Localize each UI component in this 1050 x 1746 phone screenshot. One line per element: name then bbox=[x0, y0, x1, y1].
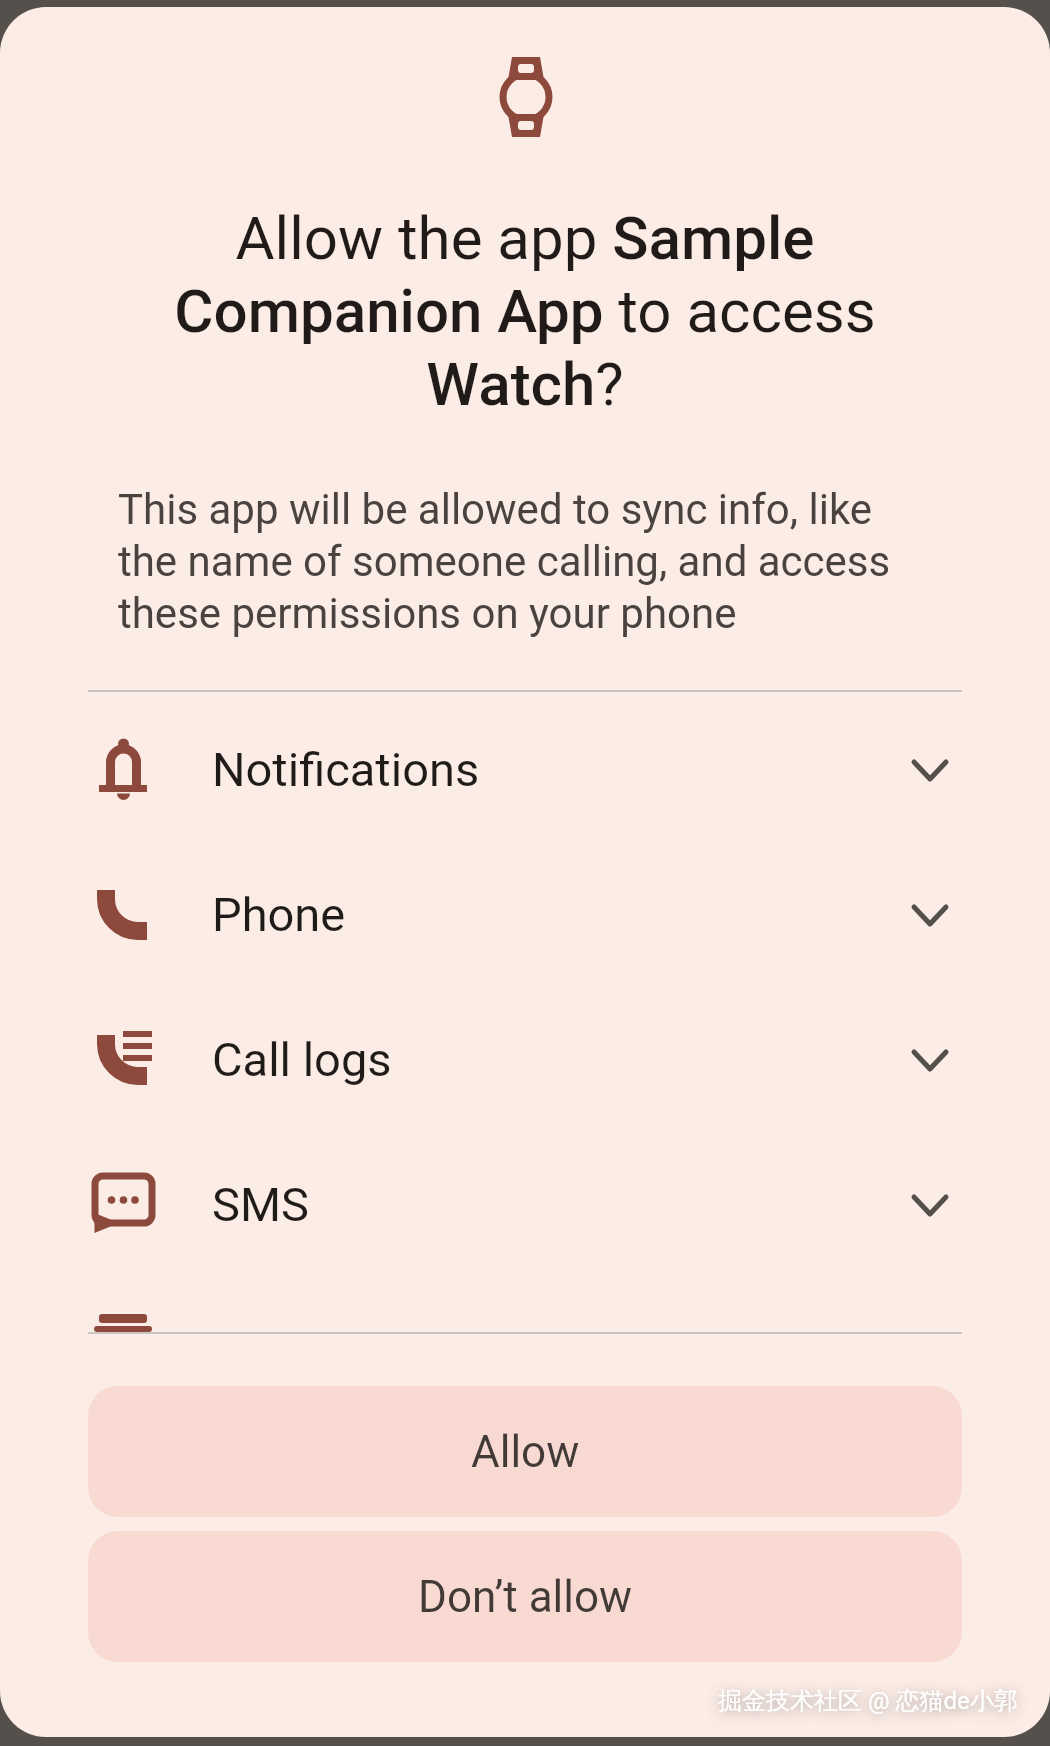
staticText: SMS bbox=[212, 1177, 309, 1232]
staticText: Allow the app Sample Companion App to ac… bbox=[0, 203, 1050, 419]
staticText: Notifications bbox=[212, 742, 480, 797]
button[interactable]: Call logs bbox=[0, 987, 1050, 1132]
staticText: This app will be allowed to sync info, l… bbox=[118, 485, 891, 638]
button[interactable]: Phone bbox=[0, 842, 1050, 987]
button[interactable]: Notifications bbox=[0, 697, 1050, 842]
staticText: Don’t allow bbox=[418, 1571, 633, 1623]
staticText: Call logs bbox=[212, 1032, 392, 1087]
staticText: Phone bbox=[212, 887, 346, 942]
staticText: 掘金技术社区 @ 恋猫de小郭 bbox=[718, 1686, 1018, 1716]
button[interactable]: Allow bbox=[88, 1386, 962, 1517]
staticText: Allow bbox=[471, 1426, 580, 1478]
button[interactable]: Don’t allow bbox=[88, 1531, 962, 1662]
button[interactable]: SMS bbox=[0, 1132, 1050, 1277]
